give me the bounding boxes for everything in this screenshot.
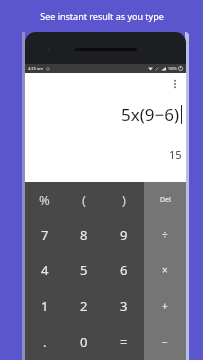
button[interactable]: ÷ — [144, 217, 186, 252]
staticText: − — [162, 335, 168, 349]
staticText: 7 — [41, 226, 49, 244]
staticText: 0 — [80, 333, 88, 351]
button[interactable]: + — [144, 288, 186, 324]
button[interactable]: % — [25, 182, 64, 217]
staticText: ÷ — [162, 228, 168, 242]
staticText: 2 — [80, 297, 88, 315]
staticText: + — [162, 299, 168, 313]
staticText: 9 — [120, 226, 128, 244]
button[interactable]: 2 — [64, 288, 104, 324]
button[interactable]: . — [25, 324, 64, 360]
staticText: 5 — [80, 261, 88, 279]
staticText: ( — [82, 191, 86, 209]
staticText: × — [162, 263, 168, 277]
button[interactable]: 7 — [25, 217, 64, 252]
button[interactable]: ( — [64, 182, 104, 217]
button[interactable]: − — [144, 324, 186, 360]
button[interactable]: = — [104, 324, 144, 360]
button[interactable]: Del — [144, 182, 186, 217]
button[interactable]: 8 — [64, 217, 104, 252]
staticText: % — [39, 191, 50, 209]
button[interactable]: 6 — [104, 252, 144, 288]
staticText: 8 — [80, 226, 88, 244]
button[interactable]: 4 — [25, 252, 64, 288]
staticText: = — [120, 333, 128, 351]
staticText: 6 — [120, 261, 128, 279]
staticText: ) — [122, 191, 126, 209]
button[interactable]: More options — [166, 75, 184, 93]
button[interactable]: 3 — [104, 288, 144, 324]
staticText: See instant result as you type — [40, 10, 164, 22]
button[interactable]: 9 — [104, 217, 144, 252]
staticText: 100% — [168, 66, 177, 71]
button[interactable]: ) — [104, 182, 144, 217]
button[interactable]: 0 — [64, 324, 104, 360]
staticText: 1 — [41, 297, 49, 315]
button[interactable]: × — [144, 252, 186, 288]
staticText: 15 — [169, 147, 182, 162]
button[interactable]: 1 — [25, 288, 64, 324]
button[interactable]: 5 — [64, 252, 104, 288]
staticText: 5x(9−6) — [121, 103, 180, 126]
staticText: . — [43, 333, 47, 351]
staticText: 4:35 am — [28, 66, 43, 71]
staticText: 3 — [120, 297, 128, 315]
staticText: Del — [160, 195, 171, 205]
staticText: 4 — [41, 261, 49, 279]
